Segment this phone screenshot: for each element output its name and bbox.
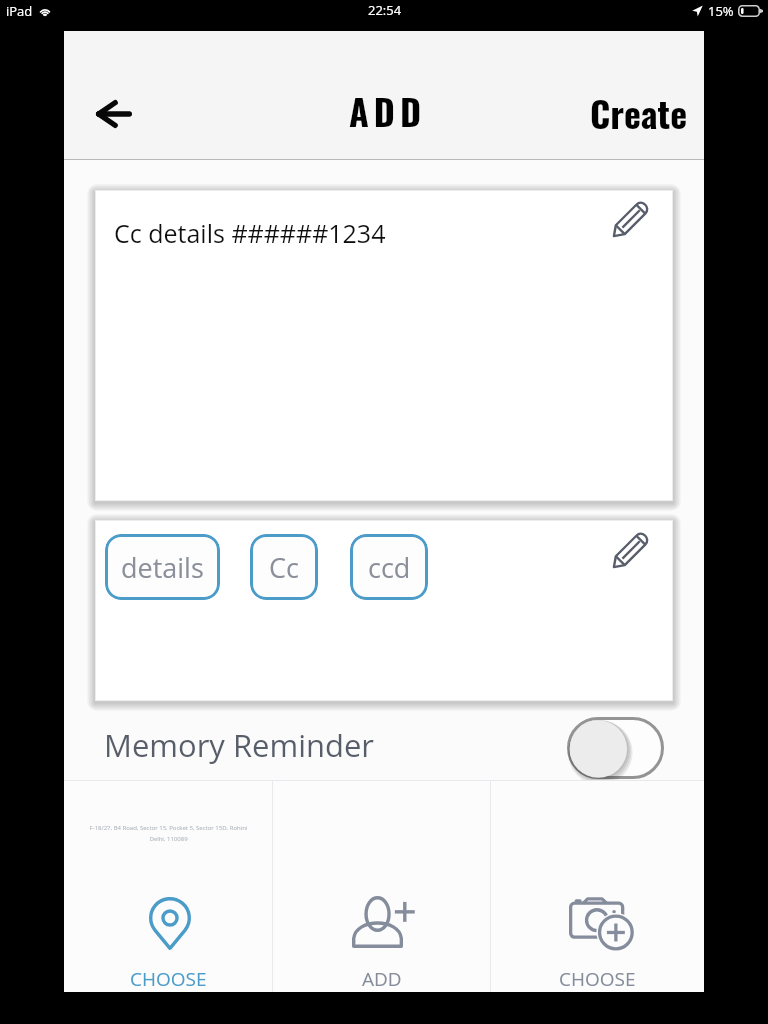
staticText: Memory Reminder — [104, 724, 375, 766]
staticText: iPad — [6, 2, 33, 20]
staticText: CHOOSE — [130, 966, 207, 992]
button[interactable]: Edit tags — [597, 517, 663, 583]
staticText: Cc — [269, 549, 299, 586]
button[interactable]: Memory Reminder toggle — [567, 717, 664, 779]
staticText: 22:54 — [368, 1, 402, 19]
button[interactable]: Back — [86, 86, 142, 142]
button[interactable]: ccd — [350, 534, 428, 600]
staticText: 15% — [708, 2, 734, 20]
button[interactable]: Create — [588, 84, 690, 141]
staticText: ADD — [362, 966, 402, 992]
button[interactable]: F-18/27, B4 Road, Sector 15, Pocket 5, S… — [64, 780, 272, 992]
button[interactable]: CHOOSE — [491, 780, 704, 992]
button[interactable]: details — [105, 534, 220, 600]
button[interactable]: Edit card details — [597, 186, 663, 252]
staticText: ccd — [368, 549, 411, 586]
staticText: details — [121, 549, 204, 586]
button[interactable]: ADD — [273, 780, 490, 992]
staticText: Cc details ######1234 — [114, 216, 386, 250]
button[interactable]: Cc — [250, 534, 318, 600]
staticText: CHOOSE — [559, 966, 636, 992]
staticText: ADD — [349, 84, 427, 137]
staticText: F-18/27, B4 Road, Sector 15, Pocket 5, S… — [87, 824, 250, 843]
